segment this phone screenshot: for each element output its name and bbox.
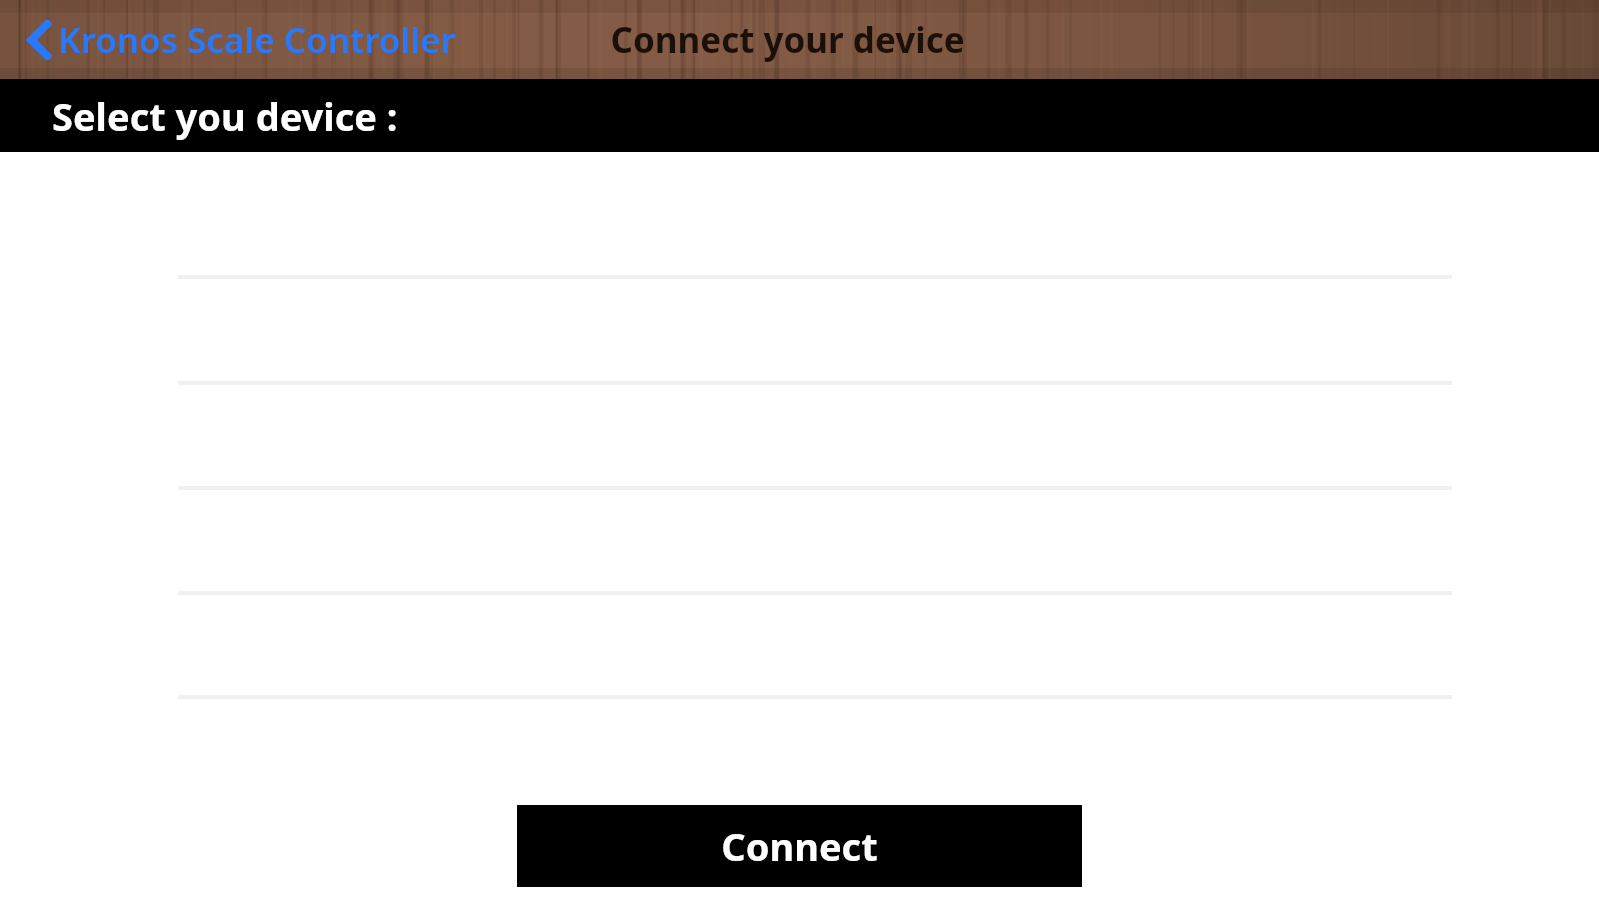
button[interactable]: Back (26, 16, 456, 64)
staticText: Connect your device (610, 16, 965, 64)
other: Back (26, 20, 52, 60)
button[interactable]: Connect (517, 805, 1082, 887)
staticText: Select you device : (52, 90, 398, 142)
staticText: Kronos Scale Controller (58, 16, 456, 64)
staticText: Connect (721, 820, 878, 872)
